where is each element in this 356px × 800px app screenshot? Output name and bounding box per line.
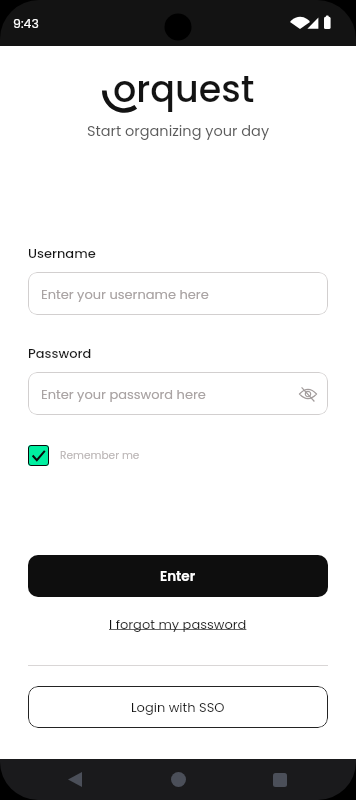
staticText: Username xyxy=(28,244,96,262)
button[interactable]: Remember me xyxy=(28,445,140,466)
staticText: orquest xyxy=(113,64,255,115)
staticText: Enter your username here xyxy=(41,285,209,303)
staticText: Remember me xyxy=(60,448,140,463)
button[interactable]: Enter xyxy=(28,555,328,597)
staticText: Enter your password here xyxy=(41,385,206,403)
button[interactable]: Back xyxy=(61,759,89,800)
button[interactable]: Recent apps xyxy=(266,759,294,800)
button[interactable]: I forgot my password xyxy=(109,615,247,633)
button[interactable]: Enter your username here xyxy=(28,272,328,315)
button[interactable]: Show password xyxy=(297,383,319,405)
staticText: Password xyxy=(28,344,92,362)
staticText: 9:43 xyxy=(13,15,39,32)
staticText: Login with SSO xyxy=(131,698,225,716)
button[interactable]: Home xyxy=(164,759,192,800)
staticText: Start organizing your day xyxy=(0,121,356,141)
button[interactable]: Enter your password here xyxy=(28,372,328,415)
button[interactable]: Login with SSO xyxy=(28,686,328,728)
staticText: Enter xyxy=(160,567,196,586)
